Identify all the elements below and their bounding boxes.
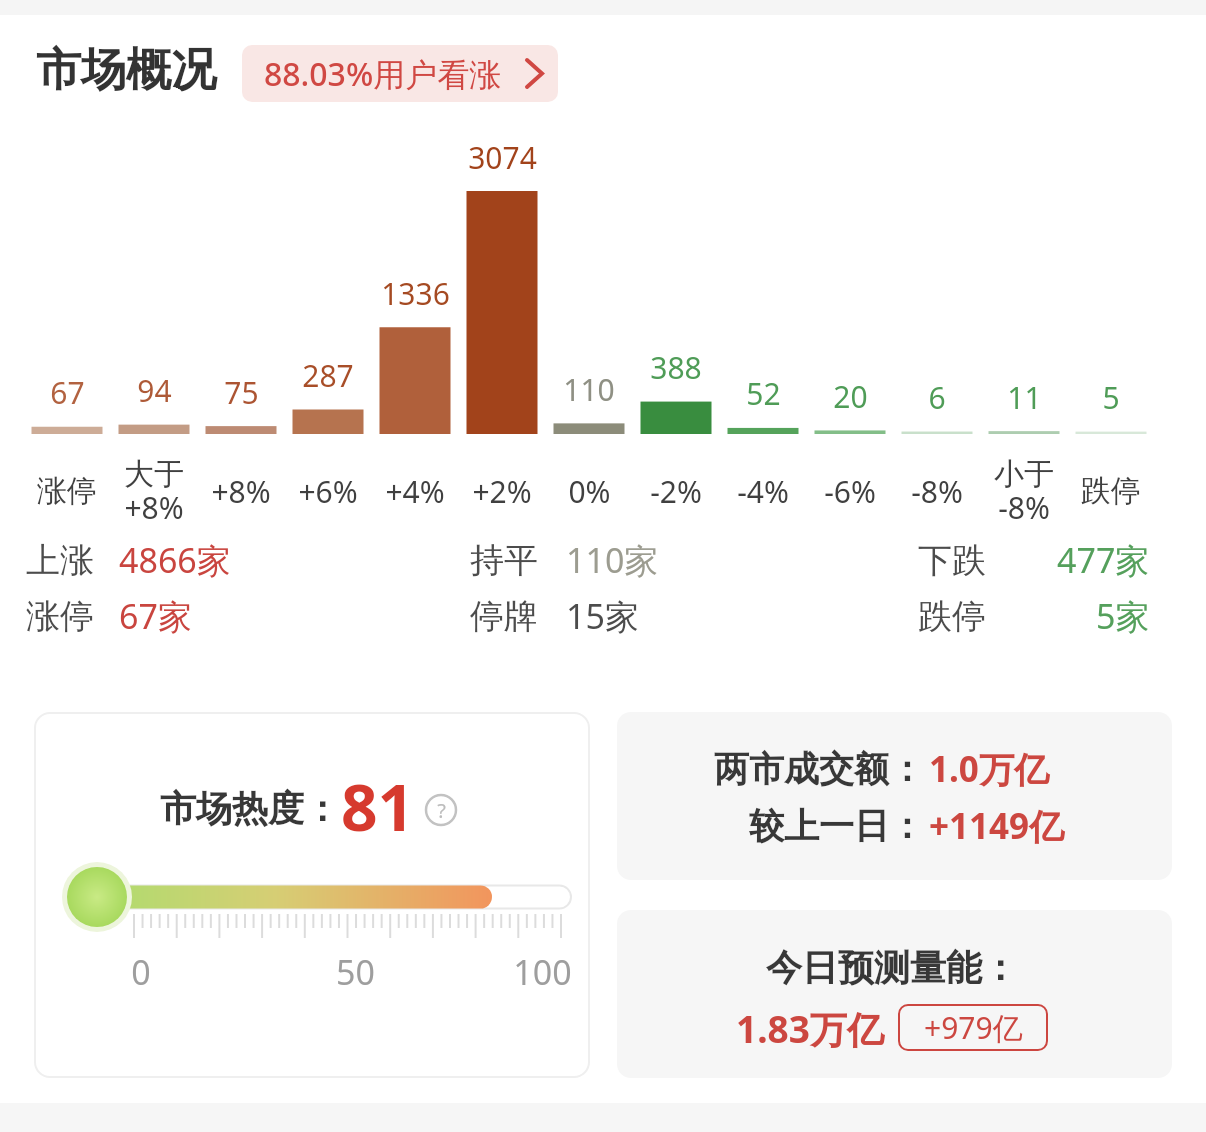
staticText: 110: [563, 369, 615, 410]
staticText: 11: [1007, 377, 1042, 418]
staticText: 小于 -8%: [994, 455, 1054, 527]
staticText: +2%: [472, 471, 532, 512]
staticText: 52: [746, 373, 781, 414]
button[interactable]: [617, 712, 1172, 880]
button[interactable]: [617, 910, 1172, 1078]
staticText: 4866家: [119, 537, 231, 583]
staticText: 停牌: [470, 595, 538, 638]
staticText: +8%: [211, 471, 271, 512]
staticText: 1.83万亿: [736, 1003, 884, 1054]
staticText: 50: [336, 949, 375, 995]
staticText: 涨停: [37, 472, 97, 510]
staticText: 大于 +8%: [124, 455, 184, 527]
button[interactable]: 88.03%用户看涨: [242, 45, 558, 102]
staticText: 0%: [568, 471, 611, 512]
staticText: 涨停: [26, 595, 94, 638]
staticText: 287: [302, 355, 354, 396]
staticText: -4%: [737, 471, 789, 512]
staticText: 477家: [1057, 537, 1150, 583]
staticText: 20: [833, 376, 868, 417]
staticText: +979亿: [924, 1007, 1023, 1048]
staticText: ?: [437, 797, 446, 824]
staticText: 5: [1102, 377, 1120, 418]
staticText: 94: [137, 370, 172, 411]
staticText: 88.03%用户看涨: [264, 52, 502, 96]
button[interactable]: [34, 712, 590, 1078]
staticText: 较上一日：: [749, 804, 924, 848]
staticText: 3074: [468, 137, 537, 178]
staticText: 81: [341, 763, 415, 850]
staticText: 67: [50, 372, 85, 413]
staticText: 0: [131, 949, 151, 995]
staticText: 67家: [119, 593, 192, 639]
staticText: +1149亿: [929, 802, 1065, 850]
staticText: +4%: [385, 471, 445, 512]
staticText: -2%: [650, 471, 702, 512]
staticText: 市场热度：: [160, 786, 340, 831]
staticText: 6: [928, 377, 946, 418]
staticText: 15家: [566, 593, 639, 639]
staticText: 持平: [470, 539, 538, 582]
staticText: 1336: [381, 273, 450, 314]
staticText: 110家: [566, 537, 659, 583]
staticText: 下跌: [918, 539, 986, 582]
staticText: 今日预测量能：: [766, 945, 1018, 990]
staticText: -6%: [824, 471, 876, 512]
staticText: 5家: [1096, 593, 1150, 639]
staticText: 388: [650, 347, 702, 388]
staticText: 100: [513, 949, 572, 995]
staticText: 跌停: [1081, 472, 1141, 510]
staticText: 两市成交额：: [714, 747, 924, 791]
staticText: 上涨: [26, 539, 94, 582]
staticText: +6%: [298, 471, 358, 512]
staticText: 市场概况: [36, 42, 216, 99]
staticText: 1.0万亿: [929, 745, 1049, 793]
staticText: 75: [224, 372, 259, 413]
staticText: 跌停: [918, 595, 986, 638]
staticText: -8%: [911, 471, 963, 512]
